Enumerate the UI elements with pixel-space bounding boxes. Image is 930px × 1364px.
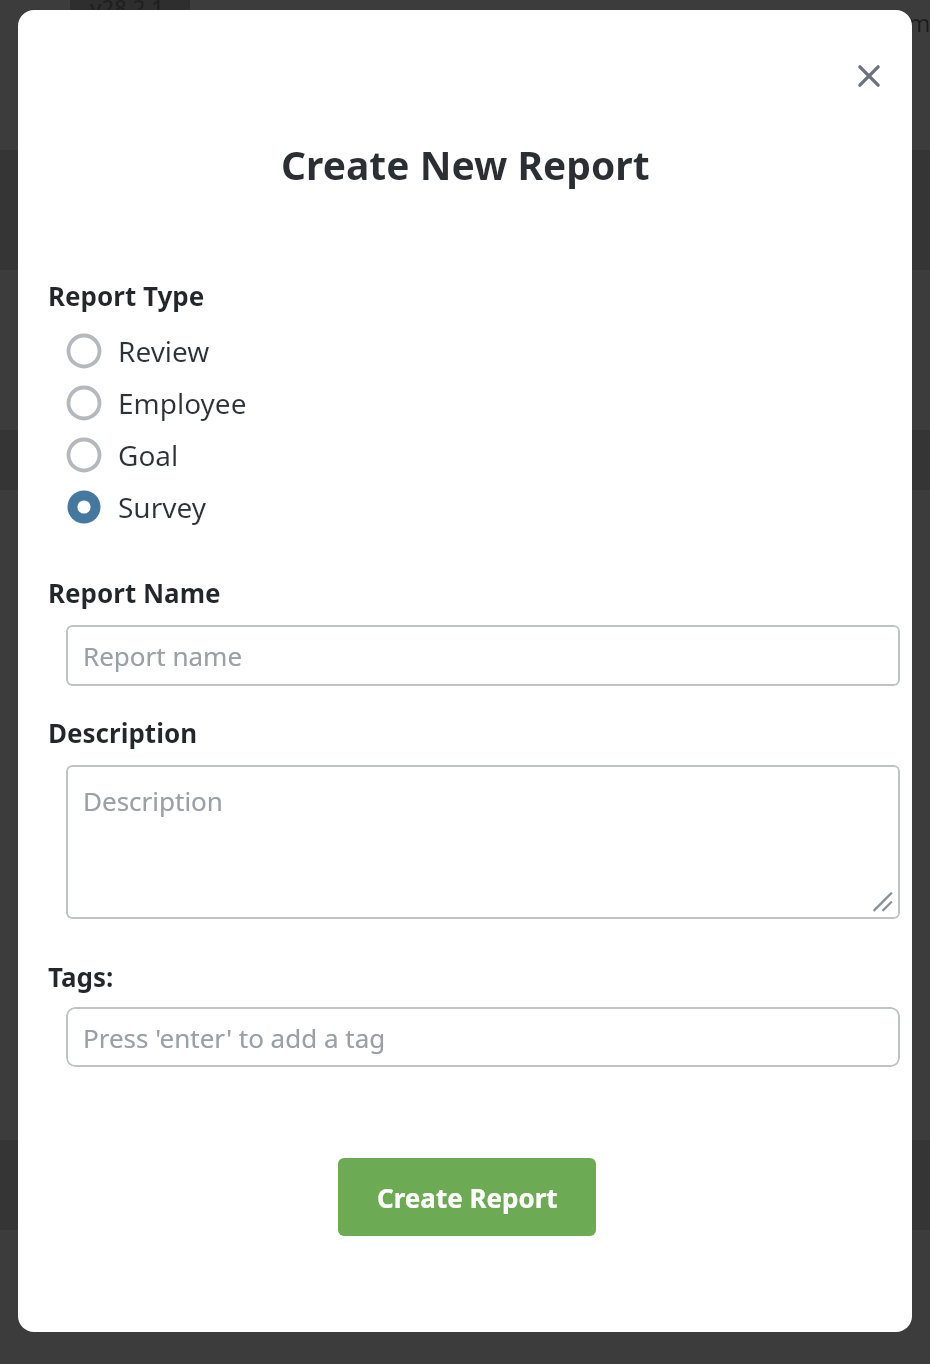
button[interactable]: Close <box>841 48 897 104</box>
staticText: m <box>908 6 930 39</box>
staticText: Create New Report <box>281 138 650 191</box>
staticText: Goal <box>118 436 179 474</box>
button[interactable]: Press 'enter' to add a tag <box>66 1007 900 1067</box>
staticText: Employee <box>118 384 247 422</box>
button[interactable]: Create Report <box>338 1158 596 1236</box>
button[interactable]: Review <box>48 325 882 377</box>
staticText: Tags: <box>48 959 114 994</box>
staticText: Description <box>48 715 198 750</box>
button[interactable]: Report name <box>66 625 900 686</box>
staticText: Review <box>118 332 210 370</box>
staticText: Press 'enter' to add a tag <box>83 1020 386 1055</box>
staticText: Report Name <box>48 575 221 610</box>
staticText: Description <box>83 783 223 818</box>
staticText: Report Type <box>48 278 205 313</box>
staticText: Report name <box>83 638 243 673</box>
button[interactable]: Survey <box>48 481 882 533</box>
button[interactable]: Goal <box>48 429 882 481</box>
button[interactable]: Description <box>66 765 900 919</box>
staticText: v28.2.1 <box>90 0 164 22</box>
staticText: Create Report <box>377 1180 558 1215</box>
button[interactable]: Employee <box>48 377 882 429</box>
staticText: Survey <box>118 488 206 526</box>
